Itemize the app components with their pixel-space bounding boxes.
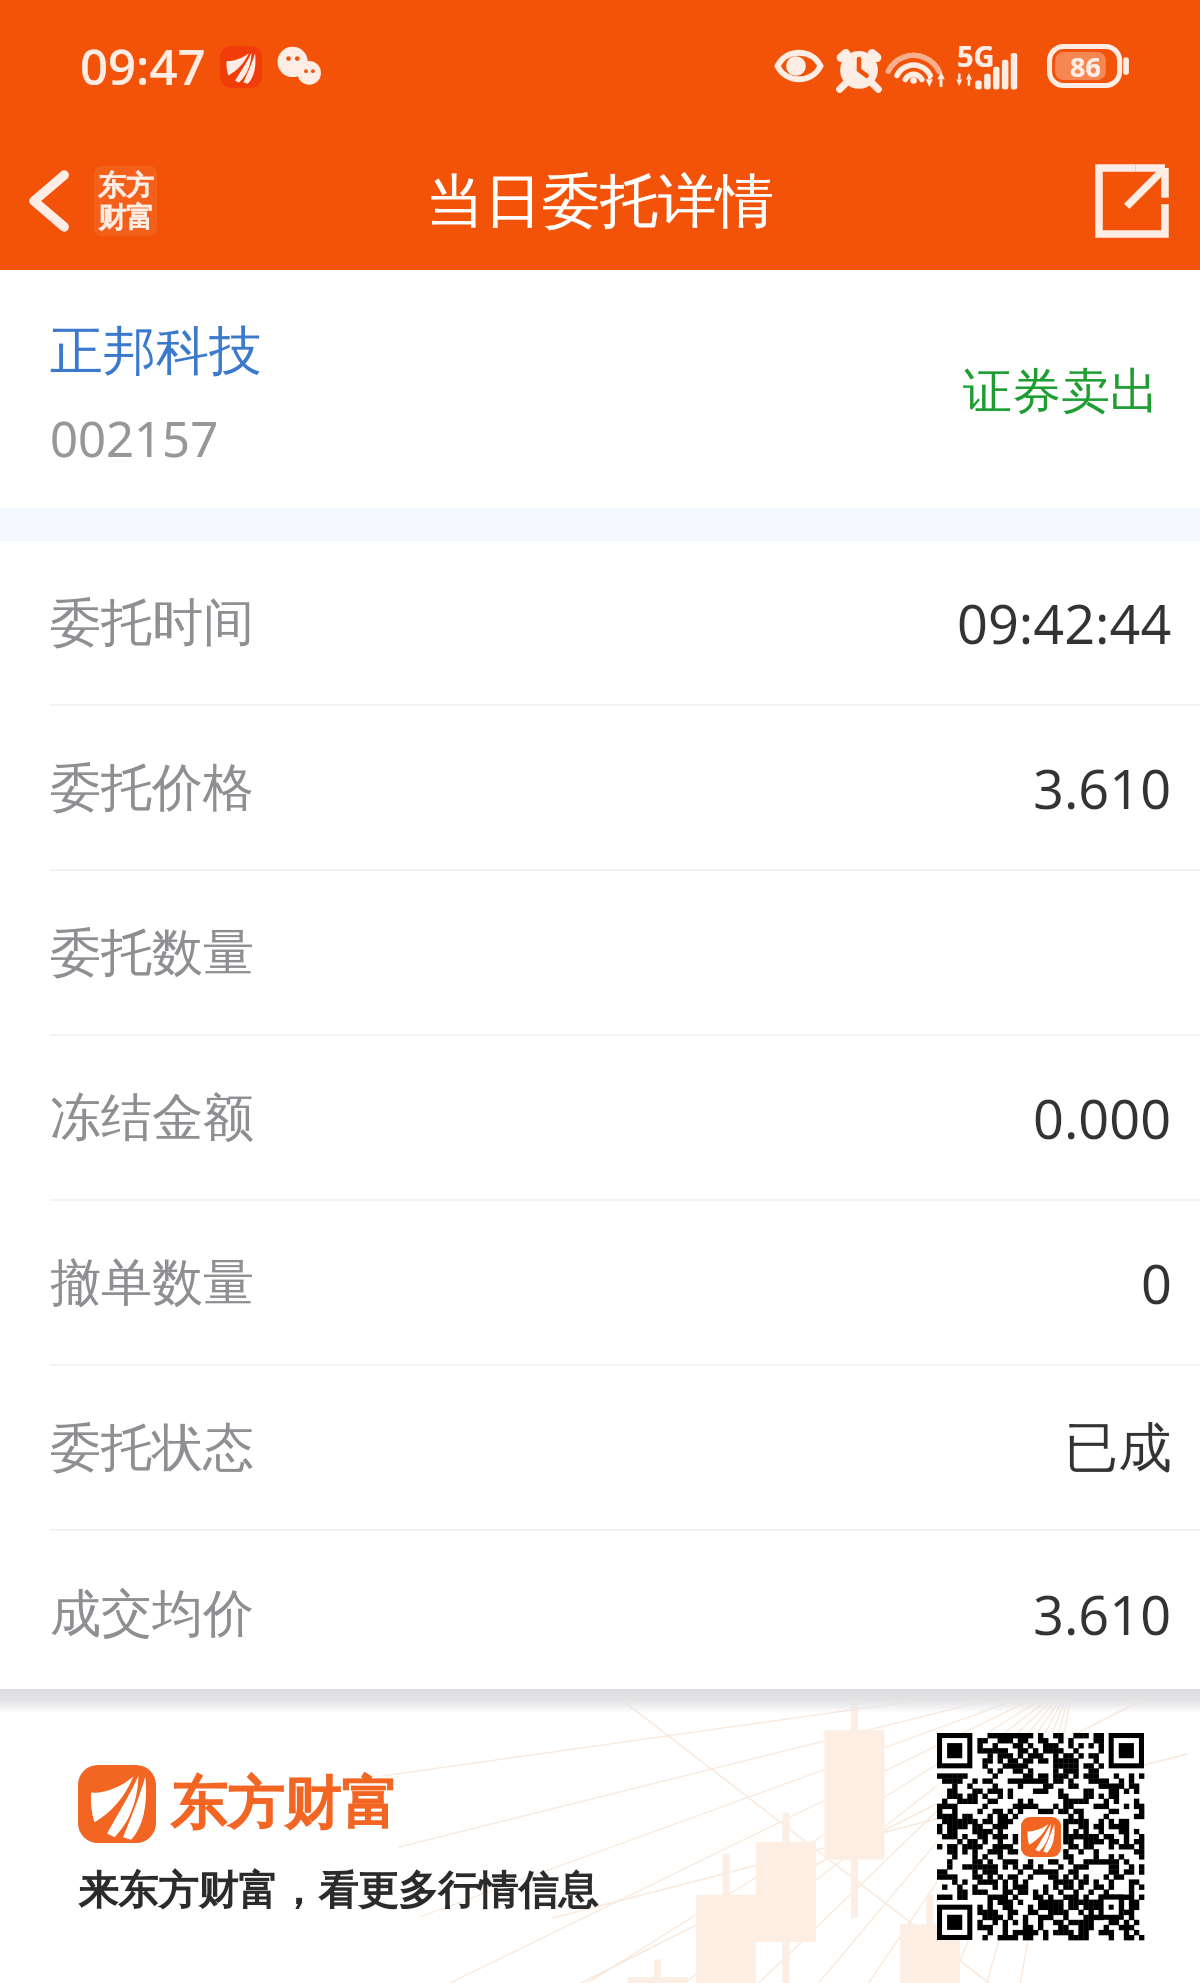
staticText: 0.000 xyxy=(1033,1081,1172,1155)
staticText: 09:42:44 xyxy=(957,586,1172,660)
staticText: 3.610 xyxy=(1033,1577,1172,1651)
staticText: 冻结金额 xyxy=(50,1086,254,1150)
staticText: 正邦科技 xyxy=(50,318,262,385)
staticText: 09:47 xyxy=(80,33,206,100)
staticText: 0 xyxy=(1141,1246,1172,1320)
staticText: 委托状态 xyxy=(50,1416,254,1480)
staticText: 3.610 xyxy=(1033,751,1172,825)
staticText: 撤单数量 xyxy=(50,1251,254,1315)
other: Back xyxy=(21,165,75,237)
staticText: 委托价格 xyxy=(50,756,254,820)
staticText: 当日委托详情 xyxy=(426,165,774,238)
staticText: 002157 xyxy=(50,405,219,472)
button[interactable]: 委托时间 xyxy=(0,541,1200,706)
staticText: 成交均价 xyxy=(50,1582,254,1646)
staticText: 东方 财富 xyxy=(98,168,154,235)
button[interactable]: Share xyxy=(1086,155,1178,247)
staticText: 委托时间 xyxy=(50,591,254,655)
staticText: 来东方财富，看更多行情信息 xyxy=(78,1865,598,1915)
staticText: 86 xyxy=(1070,48,1101,85)
button[interactable]: Back xyxy=(21,165,157,237)
staticText: 证券卖出 xyxy=(963,361,1159,423)
button[interactable]: 成交均价 xyxy=(0,1531,1200,1696)
staticText: 5G xyxy=(957,36,995,75)
button[interactable]: 正邦科技 xyxy=(0,270,1200,508)
button[interactable]: 委托数量 xyxy=(0,871,1200,1036)
button[interactable]: 委托价格 xyxy=(0,706,1200,871)
staticText: 已成 xyxy=(1064,1414,1172,1482)
button[interactable]: 冻结金额 xyxy=(0,1036,1200,1201)
button[interactable]: 撤单数量 xyxy=(0,1201,1200,1366)
staticText: 委托数量 xyxy=(50,921,254,985)
button[interactable]: 东方财富 xyxy=(0,1689,1200,1983)
staticText: 东方财富 xyxy=(170,1768,398,1840)
button[interactable]: 委托状态 xyxy=(0,1366,1200,1531)
